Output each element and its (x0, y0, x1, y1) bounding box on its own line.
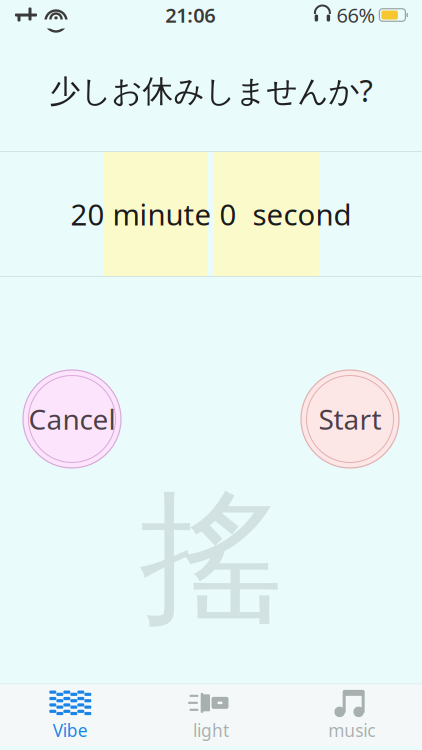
staticText: second (236, 194, 351, 233)
button[interactable]: Cancel (20, 367, 124, 471)
staticText: 66% (336, 2, 375, 28)
staticText: 搖 (139, 471, 283, 647)
button[interactable]: light (141, 684, 281, 746)
staticText: light (193, 719, 229, 742)
staticText: 少しお休みしませんか? (49, 70, 372, 110)
staticText: 0 (219, 194, 236, 233)
button[interactable]: music (281, 684, 422, 746)
staticText: music (328, 719, 375, 742)
button[interactable]: Vibe (0, 684, 141, 746)
staticText: minute (104, 194, 219, 233)
staticText: Vibe (53, 719, 88, 742)
staticText: Cancel (28, 400, 115, 438)
button[interactable]: Start (298, 367, 402, 471)
staticText: Start (318, 400, 381, 438)
staticText: 21:06 (165, 2, 215, 28)
staticText: 20 (70, 194, 104, 233)
